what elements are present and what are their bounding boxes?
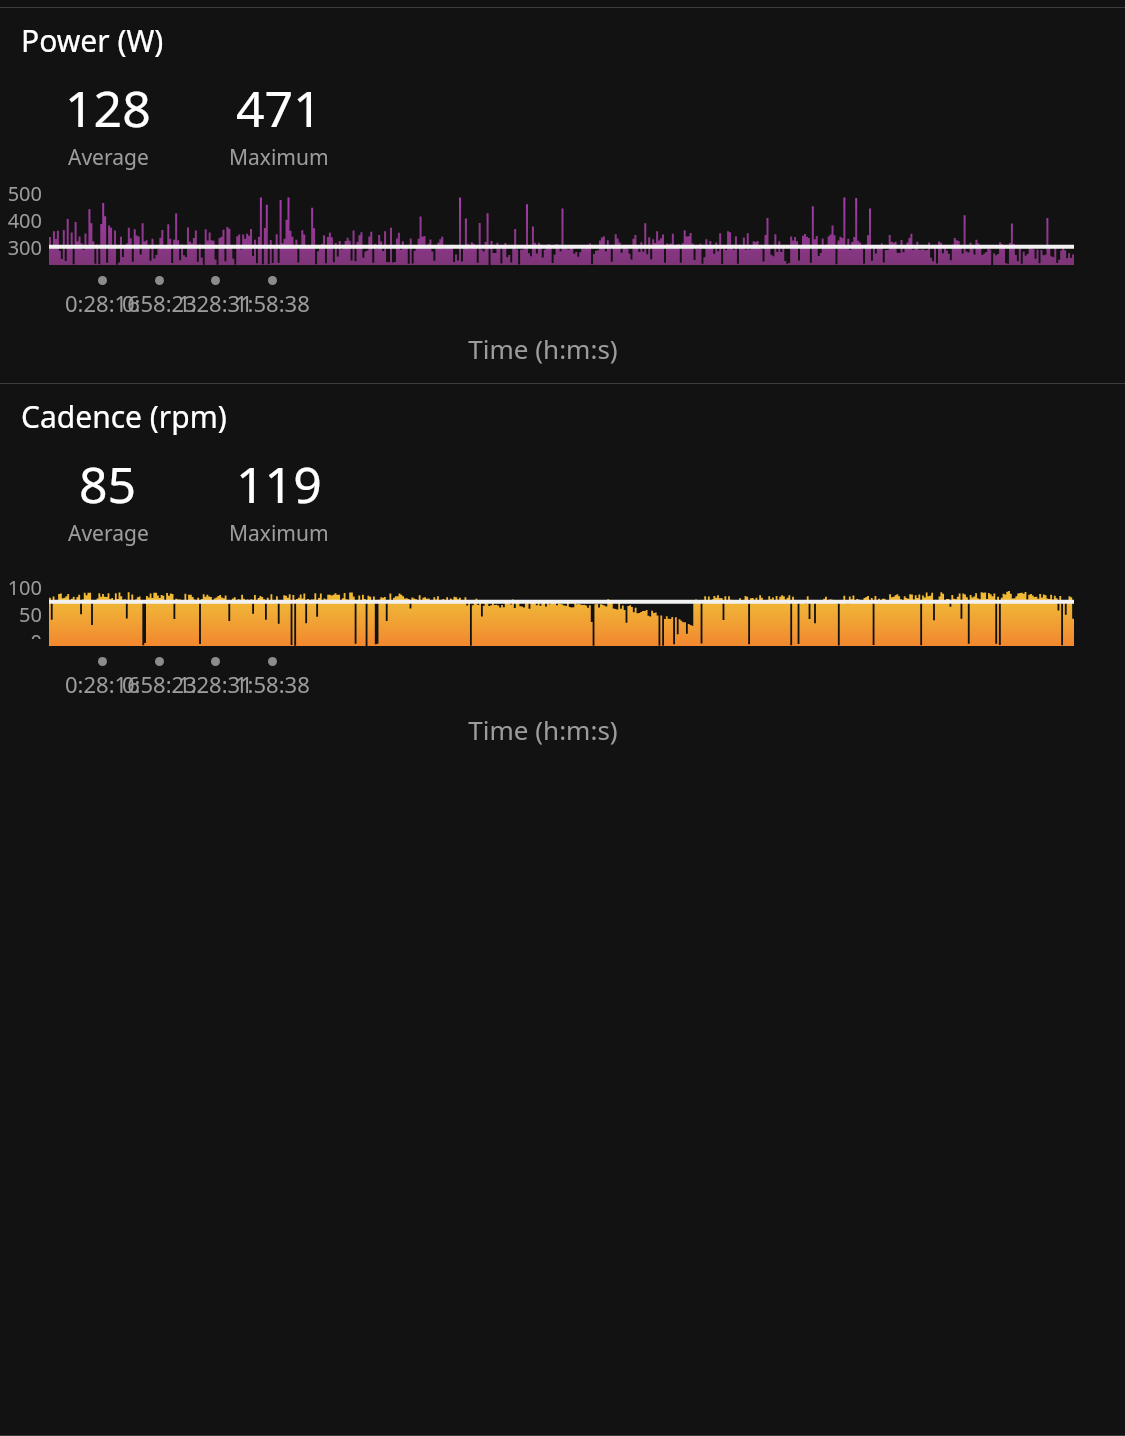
staticText: 400 <box>7 207 42 234</box>
staticText: Time (h:m:s) <box>0 331 1086 366</box>
staticText: Time (h:m:s) <box>0 712 1086 747</box>
staticText: 128 <box>65 74 151 142</box>
staticText: 471 <box>236 74 322 142</box>
staticText: 1:28:31 <box>178 669 253 699</box>
staticText: 119 <box>236 450 322 518</box>
staticText: 100 <box>7 574 42 601</box>
button[interactable]: Power (W) <box>0 8 1125 383</box>
staticText: 0 <box>30 628 42 639</box>
button[interactable]: Cadence (rpm) <box>0 384 1125 764</box>
staticText: Average <box>68 143 149 172</box>
staticText: 0:58:23 <box>122 288 197 318</box>
staticText: 500 <box>7 180 42 207</box>
staticText: 1:58:38 <box>235 288 310 318</box>
staticText: 1:58:38 <box>235 669 310 699</box>
staticText: 0:28:16 <box>65 669 140 699</box>
staticText: 300 <box>7 234 42 258</box>
staticText: 0:58:23 <box>122 669 197 699</box>
staticText: Average <box>68 519 149 548</box>
staticText: Maximum <box>229 519 329 548</box>
staticText: Maximum <box>229 143 329 172</box>
staticText: 50 <box>19 601 42 628</box>
staticText: 0:28:16 <box>65 288 140 318</box>
staticText: 1:28:31 <box>178 288 253 318</box>
staticText: Power (W) <box>21 20 164 61</box>
staticText: 85 <box>79 450 137 518</box>
staticText: Cadence (rpm) <box>21 396 227 437</box>
